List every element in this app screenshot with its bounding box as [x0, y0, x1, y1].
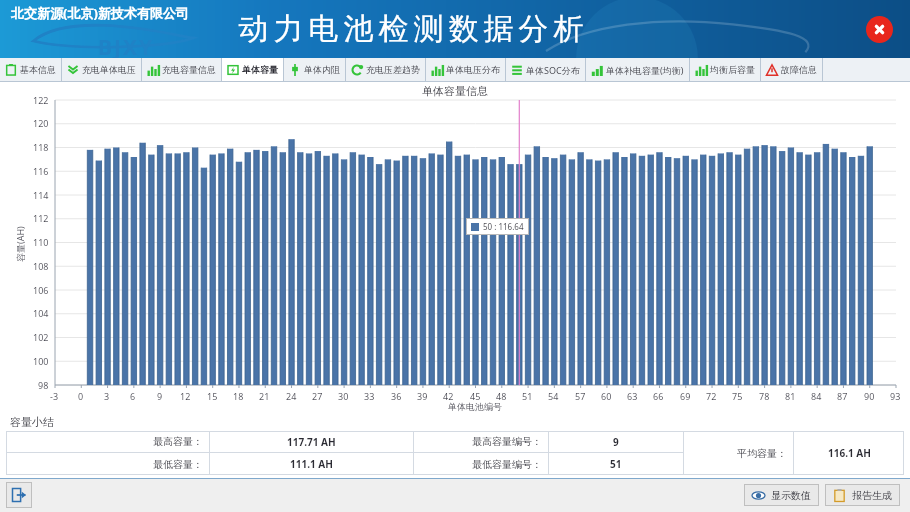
staticText: 57: [575, 390, 586, 402]
staticText: 100: [33, 355, 49, 367]
staticText: 显示数值: [771, 489, 811, 502]
staticText: 60: [601, 390, 612, 402]
staticText: 容量(AH): [14, 226, 26, 262]
staticText: 平均容量：: [737, 447, 787, 460]
staticText: 最高容量：: [153, 435, 203, 448]
staticText: 3: [104, 390, 110, 402]
staticText: 单体补电容量(均衡): [606, 64, 684, 76]
staticText: 单体电池编号: [448, 401, 502, 412]
staticText: 50 : 116.64: [483, 221, 524, 232]
staticText: 69: [680, 390, 691, 402]
staticText: 111.1 AH: [290, 457, 333, 471]
button[interactable]: 显示数值: [744, 484, 819, 506]
button[interactable]: 单体补电容量(均衡): [586, 58, 689, 81]
staticText: 114: [33, 189, 49, 201]
staticText: 33: [364, 390, 375, 402]
staticText: 42: [443, 390, 454, 402]
staticText: 63: [627, 390, 638, 402]
staticText: 容量小结: [10, 415, 54, 429]
staticText: BJXY: [98, 33, 155, 62]
staticText: 单体容量信息: [422, 84, 488, 98]
staticText: 81: [785, 390, 796, 402]
staticText: 90: [864, 390, 875, 402]
staticText: 单体内阻: [304, 64, 340, 75]
staticText: 36: [391, 390, 402, 402]
button[interactable]: 充电容量信息: [142, 58, 221, 81]
button[interactable]: 充电压差趋势: [346, 58, 425, 81]
staticText: 66: [653, 390, 664, 402]
staticText: 72: [706, 390, 717, 402]
button[interactable]: 报告生成: [825, 484, 900, 506]
staticText: 单体容量: [242, 64, 278, 75]
button[interactable]: 单体内阻: [284, 58, 345, 81]
button[interactable]: 单体电压分布: [426, 58, 505, 81]
staticText: 动力电池检测数据分析: [236, 10, 586, 48]
staticText: 6: [130, 390, 136, 402]
staticText: 充电压差趋势: [366, 64, 420, 75]
staticText: 102: [33, 331, 49, 343]
staticText: 报告生成: [852, 489, 892, 502]
staticText: 51: [610, 457, 622, 471]
button[interactable]: Close: [866, 16, 893, 43]
staticText: 104: [33, 307, 49, 319]
staticText: 106: [33, 284, 49, 296]
staticText: 单体电压分布: [446, 64, 500, 75]
staticText: -3: [50, 390, 59, 402]
staticText: 均衡后容量: [710, 64, 755, 75]
staticText: 98: [38, 379, 49, 391]
staticText: 12: [180, 390, 191, 402]
staticText: 118: [33, 141, 49, 153]
staticText: 84: [811, 390, 822, 402]
staticText: 9: [613, 435, 619, 449]
staticText: 24: [286, 390, 297, 402]
staticText: 39: [417, 390, 428, 402]
staticText: 116.1 AH: [828, 446, 871, 460]
staticText: 75: [732, 390, 743, 402]
staticText: 48: [496, 390, 507, 402]
staticText: 最低容量编号：: [472, 458, 542, 471]
button[interactable]: 单体容量: [222, 58, 283, 81]
staticText: 112: [33, 212, 49, 224]
staticText: 北交新源(北京)新技术有限公司: [11, 4, 189, 22]
staticText: 故障信息: [781, 64, 817, 75]
staticText: 15: [207, 390, 218, 402]
staticText: 9: [157, 390, 163, 402]
staticText: 充电单体电压: [82, 64, 136, 75]
staticText: 87: [837, 390, 848, 402]
staticText: 110: [33, 236, 49, 248]
button[interactable]: 均衡后容量: [690, 58, 760, 81]
staticText: 最低容量：: [153, 458, 203, 471]
button[interactable]: 充电单体电压: [62, 58, 141, 81]
button[interactable]: 基本信息: [0, 58, 61, 81]
staticText: 21: [259, 390, 270, 402]
staticText: 基本信息: [20, 64, 56, 75]
staticText: 45: [470, 390, 481, 402]
staticText: 最高容量编号：: [472, 435, 542, 448]
button[interactable]: 故障信息: [761, 58, 822, 81]
button[interactable]: 单体SOC分布: [506, 58, 585, 81]
staticText: 108: [33, 260, 49, 272]
staticText: 78: [759, 390, 770, 402]
button[interactable]: Exit: [6, 482, 32, 508]
staticText: 122: [33, 94, 49, 106]
staticText: 单体SOC分布: [526, 64, 580, 76]
staticText: 27: [312, 390, 323, 402]
staticText: 0: [78, 390, 84, 402]
staticText: 120: [33, 117, 49, 129]
staticText: 18: [233, 390, 244, 402]
staticText: 117.71 AH: [287, 435, 336, 449]
staticText: 116: [33, 165, 49, 177]
staticText: 充电容量信息: [162, 64, 216, 75]
staticText: 93: [890, 390, 901, 402]
staticText: 51: [522, 390, 533, 402]
staticText: 54: [548, 390, 559, 402]
staticText: 30: [338, 390, 349, 402]
